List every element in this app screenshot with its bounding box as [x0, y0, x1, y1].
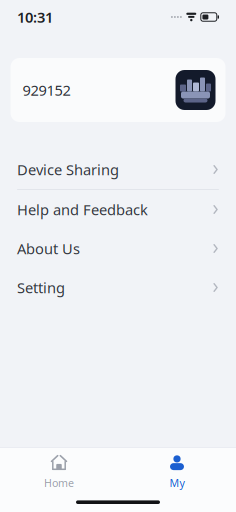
button[interactable]: Help and Feedback [0, 190, 236, 229]
staticText: Setting [17, 278, 65, 297]
staticText: 10:31 [17, 7, 53, 27]
staticText: My [169, 476, 184, 490]
button[interactable]: Device Sharing [0, 150, 236, 189]
staticText: About Us [17, 239, 80, 258]
button[interactable]: Home [0, 448, 118, 496]
staticText: Help and Feedback [17, 200, 148, 219]
button[interactable]: Setting [0, 268, 236, 307]
staticText: Home [44, 476, 74, 490]
button[interactable]: My [118, 448, 236, 496]
button[interactable]: About Us [0, 229, 236, 268]
staticText: Device Sharing [17, 160, 119, 179]
button[interactable]: 929152 [10, 58, 225, 122]
staticText: 929152 [22, 80, 70, 100]
